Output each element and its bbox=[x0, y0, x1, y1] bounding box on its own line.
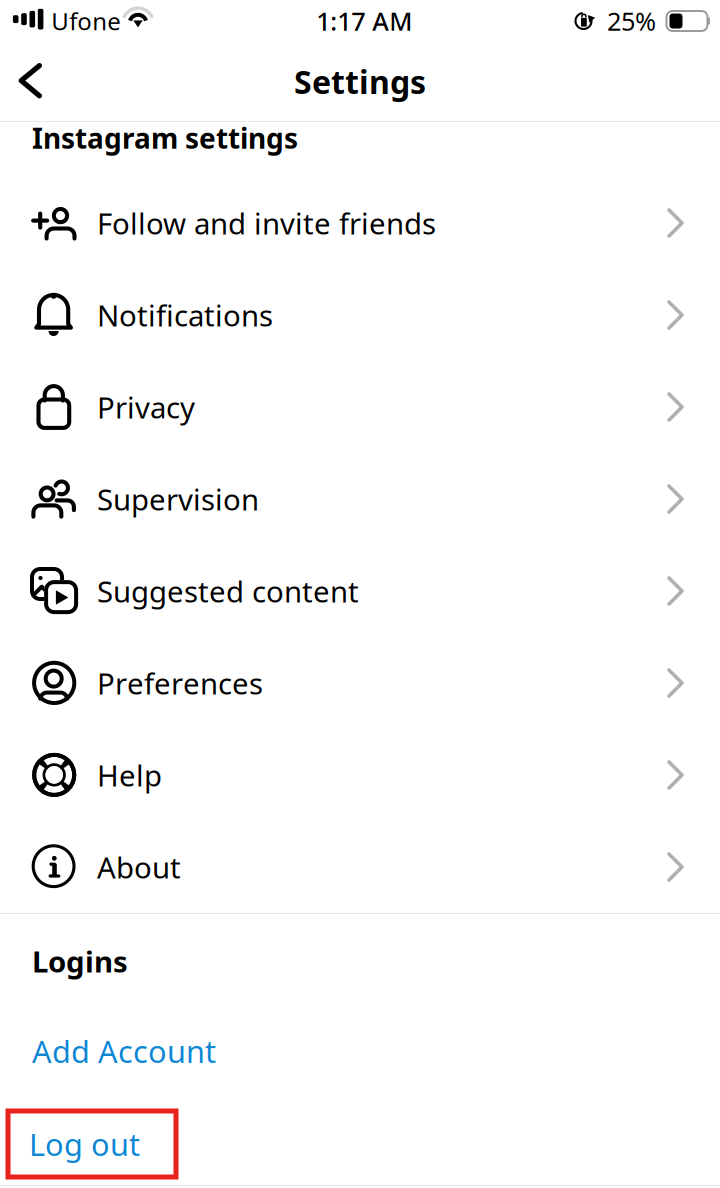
staticText: Instagram settings bbox=[32, 119, 298, 157]
staticText: Log out bbox=[29, 1124, 140, 1164]
staticText: Follow and invite friends bbox=[97, 203, 436, 242]
button[interactable]: Log out bbox=[8, 1111, 176, 1177]
staticText: Notifications bbox=[97, 295, 273, 334]
staticText: Ufone bbox=[51, 5, 121, 37]
staticText: Supervision bbox=[97, 479, 259, 518]
button[interactable]: Back bbox=[0, 42, 60, 121]
staticText: Add Account bbox=[32, 1031, 216, 1071]
button[interactable]: Follow and invite friends bbox=[0, 177, 720, 269]
button[interactable]: About bbox=[0, 821, 720, 913]
button[interactable]: Notifications bbox=[0, 269, 720, 361]
staticText: Privacy bbox=[97, 387, 195, 426]
button[interactable]: Preferences bbox=[0, 637, 720, 729]
staticText: 1:17 AM bbox=[316, 4, 412, 38]
staticText: Logins bbox=[32, 941, 128, 980]
button[interactable]: Help bbox=[0, 729, 720, 821]
staticText: About bbox=[97, 847, 181, 886]
button[interactable]: Privacy bbox=[0, 361, 720, 453]
button[interactable]: Suggested content bbox=[0, 545, 720, 637]
staticText: Help bbox=[97, 755, 162, 794]
button[interactable]: Supervision bbox=[0, 453, 720, 545]
staticText: Suggested content bbox=[97, 571, 359, 610]
staticText: 25% bbox=[607, 4, 656, 38]
button[interactable]: Add Account bbox=[0, 1008, 720, 1094]
staticText: Settings bbox=[294, 60, 426, 103]
staticText: Preferences bbox=[97, 663, 263, 702]
